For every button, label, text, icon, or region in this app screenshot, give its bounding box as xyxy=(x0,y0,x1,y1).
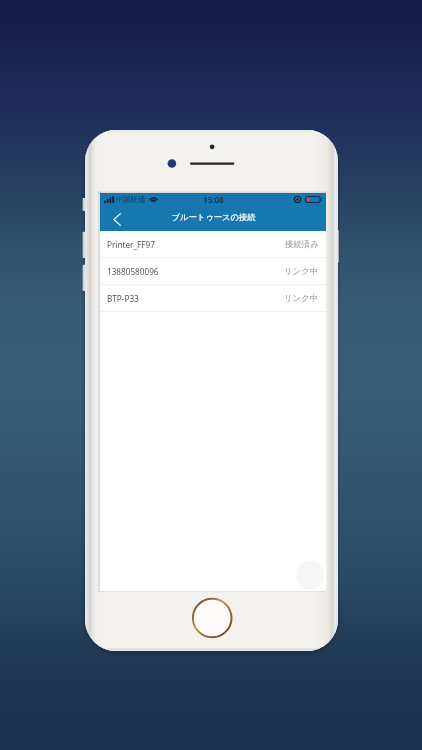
staticText: 13880580096 xyxy=(107,266,159,277)
staticText: ブルートゥースの接続 xyxy=(171,212,256,222)
staticText: BTP-P33 xyxy=(107,293,139,304)
button[interactable]: BTP-P33 xyxy=(100,285,326,311)
button[interactable]: Printer_FF97 xyxy=(100,231,326,257)
staticText: 中国联通 xyxy=(116,195,146,204)
button[interactable]: 13880580096 xyxy=(100,258,326,284)
button[interactable]: Back xyxy=(105,207,129,231)
staticText: Printer_FF97 xyxy=(107,239,155,250)
button[interactable]: Add device xyxy=(296,561,324,589)
staticText: 接続済み xyxy=(285,239,319,250)
staticText: リンク中 xyxy=(284,293,319,304)
staticText: リンク中 xyxy=(284,266,319,277)
staticText: 15:08 xyxy=(203,194,224,205)
